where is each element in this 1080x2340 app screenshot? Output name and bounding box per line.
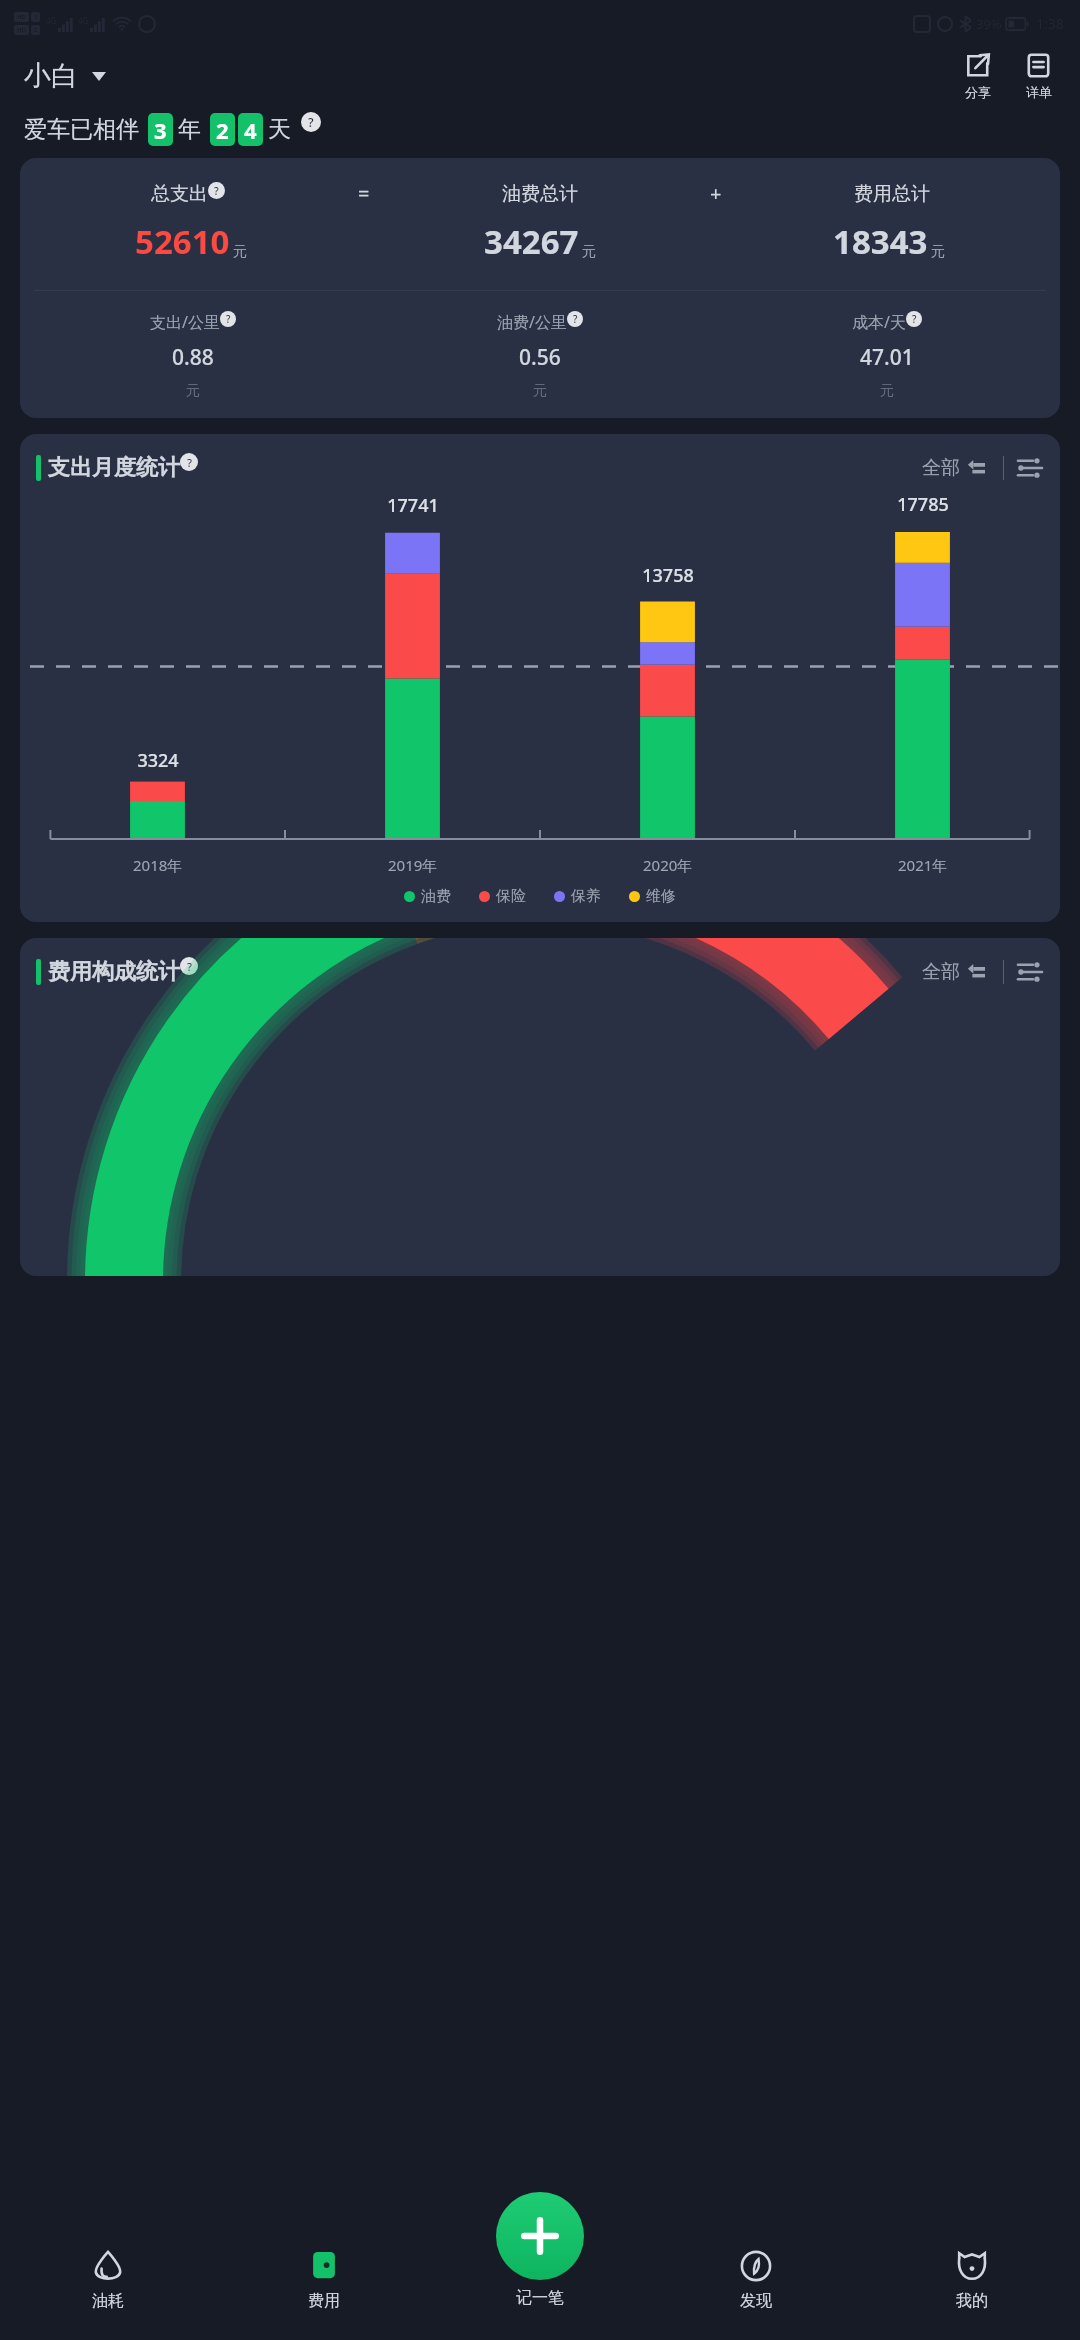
staticText: 发现 bbox=[740, 2291, 772, 2311]
staticText: 全部 bbox=[922, 456, 960, 480]
staticText: ? bbox=[187, 455, 192, 470]
staticText: 元 bbox=[931, 243, 945, 261]
staticText: 年 bbox=[178, 115, 201, 144]
staticText: 油费 bbox=[421, 887, 451, 906]
staticText: 小白 bbox=[24, 59, 78, 93]
staticText: 维修 bbox=[646, 887, 676, 906]
staticText: 元 bbox=[233, 243, 247, 261]
staticText: 1:38 bbox=[1036, 14, 1064, 33]
other: 分享 bbox=[964, 52, 991, 79]
staticText: 费用总计 bbox=[854, 182, 930, 206]
button[interactable]: 维修 bbox=[627, 885, 678, 908]
staticText: 分享 bbox=[965, 84, 991, 100]
staticText: 费用 bbox=[308, 2291, 340, 2311]
button[interactable]: 帮助 bbox=[906, 311, 922, 327]
staticText: 元 bbox=[186, 382, 200, 400]
staticText: + bbox=[710, 180, 722, 207]
button[interactable]: 帮助 bbox=[180, 453, 198, 471]
button[interactable]: 详单 bbox=[1019, 50, 1058, 102]
staticText: 油费/公里 bbox=[497, 311, 567, 333]
staticText: 我的 bbox=[956, 2291, 988, 2311]
staticText: 2019年 bbox=[388, 855, 438, 875]
staticText: 0.56 bbox=[519, 343, 561, 372]
button[interactable]: 总支出 bbox=[20, 158, 1060, 418]
staticText: 39% bbox=[976, 15, 1002, 33]
button[interactable]: 费用 bbox=[216, 2210, 432, 2340]
staticText: 记一笔 bbox=[516, 2288, 564, 2308]
staticText: 天 bbox=[268, 115, 291, 144]
staticText: 详单 bbox=[1026, 84, 1052, 100]
staticText: 油费总计 bbox=[502, 182, 578, 206]
staticText: 元 bbox=[582, 243, 596, 261]
staticText: 0.88 bbox=[172, 343, 214, 372]
staticText: 爱车已相伴 bbox=[24, 115, 139, 144]
staticText: 52610 bbox=[135, 219, 230, 264]
button[interactable]: 全部 bbox=[918, 452, 989, 484]
button[interactable]: 小白 bbox=[22, 53, 108, 99]
staticText: 油耗 bbox=[92, 2291, 124, 2311]
staticText: ? bbox=[187, 959, 192, 974]
staticText: 3324 bbox=[137, 748, 179, 773]
staticText: 元 bbox=[880, 382, 894, 400]
button[interactable]: 筛选 bbox=[1018, 960, 1042, 984]
button[interactable]: 帮助 bbox=[208, 182, 225, 199]
button[interactable]: 油耗 bbox=[0, 2210, 216, 2340]
staticText: 47.01 bbox=[860, 343, 914, 372]
staticText: ? bbox=[573, 312, 578, 326]
other: 详单 bbox=[1025, 52, 1052, 79]
button[interactable]: 保养 bbox=[552, 885, 603, 908]
button[interactable]: 筛选 bbox=[1018, 456, 1042, 480]
staticText: 元 bbox=[533, 382, 547, 400]
staticText: 4 bbox=[244, 115, 257, 145]
staticText: 2018年 bbox=[133, 855, 183, 875]
staticText: 4G bbox=[46, 15, 57, 26]
staticText: ? bbox=[912, 312, 917, 326]
button[interactable]: 我的 bbox=[864, 2210, 1080, 2340]
staticText: 成本/天 bbox=[852, 311, 906, 333]
button[interactable]: 记一笔 bbox=[496, 2192, 584, 2280]
staticText: 保险 bbox=[496, 887, 526, 906]
button[interactable]: 发现 bbox=[648, 2210, 864, 2340]
staticText: 2021年 bbox=[898, 855, 948, 875]
button[interactable]: 油费 bbox=[402, 885, 453, 908]
staticText: 4G bbox=[78, 15, 89, 26]
staticText: 费用构成统计 bbox=[48, 958, 180, 986]
staticText: 支出月度统计 bbox=[48, 454, 180, 482]
staticText: 17741 bbox=[387, 493, 439, 518]
staticText: 全部 bbox=[922, 960, 960, 984]
staticText: ? bbox=[226, 312, 231, 326]
staticText: ? bbox=[308, 114, 314, 131]
staticText: 2 bbox=[216, 115, 229, 145]
button[interactable]: 帮助 bbox=[180, 957, 198, 975]
button[interactable]: 帮助 bbox=[567, 311, 583, 327]
staticText: 2020年 bbox=[643, 855, 693, 875]
button[interactable]: 分享 bbox=[958, 50, 997, 102]
staticText: 13758 bbox=[642, 563, 694, 588]
staticText: HD bbox=[17, 26, 26, 34]
staticText: HD bbox=[17, 13, 26, 21]
staticText: 34267 bbox=[484, 219, 579, 264]
button[interactable]: 保险 bbox=[477, 885, 528, 908]
staticText: 3 bbox=[154, 115, 167, 145]
staticText: 保养 bbox=[571, 887, 601, 906]
button[interactable]: 全部 bbox=[918, 956, 989, 988]
staticText: 18343 bbox=[833, 219, 928, 264]
staticText: 支出/公里 bbox=[150, 311, 220, 333]
button[interactable]: 帮助 bbox=[301, 112, 321, 132]
staticText: 总支出 bbox=[151, 182, 208, 206]
button[interactable]: 帮助 bbox=[220, 311, 236, 327]
staticText: 17785 bbox=[897, 492, 949, 517]
staticText: 2 bbox=[34, 26, 38, 34]
staticText: ? bbox=[214, 184, 219, 198]
staticText: = bbox=[358, 180, 370, 207]
